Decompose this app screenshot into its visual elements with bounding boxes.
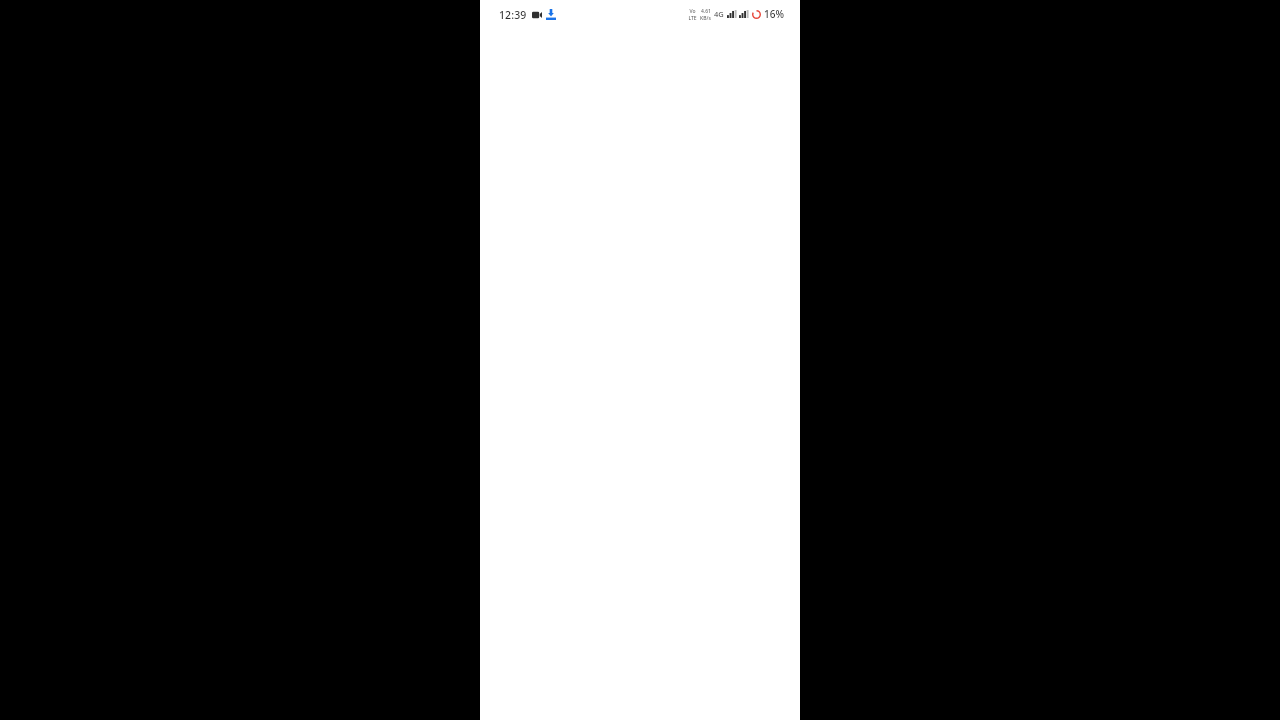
other: Battery 16 percent (752, 10, 761, 19)
other: Mobile signal (727, 10, 736, 18)
staticText: 16% (764, 7, 784, 21)
staticText: KB/s (700, 15, 711, 22)
staticText: 12:39 (499, 8, 527, 22)
staticText: 4.61 (701, 8, 711, 15)
other: Mobile signal (739, 10, 748, 18)
other: Screen recording (532, 11, 542, 19)
other: Download (546, 9, 556, 20)
staticText: Vo (689, 8, 696, 15)
staticText: 4G (714, 9, 724, 19)
staticText: LTE (688, 15, 697, 22)
